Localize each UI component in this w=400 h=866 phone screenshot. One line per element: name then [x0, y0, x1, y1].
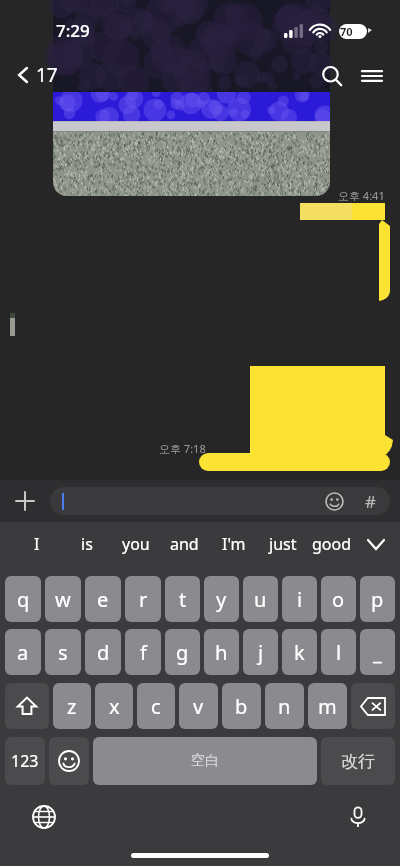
- staticText: a: [17, 639, 29, 666]
- staticText: q: [17, 586, 30, 613]
- staticText: y: [216, 586, 227, 613]
- staticText: I: [34, 533, 40, 555]
- staticText: just: [269, 533, 297, 555]
- staticText: v: [193, 693, 204, 720]
- button[interactable]: Search: [314, 58, 350, 94]
- button[interactable]: Collapse suggestions: [356, 522, 396, 566]
- staticText: 7:29: [56, 19, 90, 42]
- button[interactable]: g: [165, 629, 200, 675]
- staticText: _: [373, 639, 382, 666]
- staticText: u: [254, 586, 267, 613]
- staticText: is: [81, 533, 93, 555]
- staticText: m: [318, 693, 337, 720]
- staticText: 空白: [191, 752, 219, 770]
- staticText: b: [235, 693, 248, 720]
- staticText: o: [332, 586, 345, 613]
- button[interactable]: q: [5, 576, 41, 622]
- staticText: 123: [11, 750, 39, 772]
- staticText: x: [109, 693, 120, 720]
- button[interactable]: good: [307, 522, 356, 566]
- button[interactable]: x: [95, 683, 133, 729]
- staticText: g: [176, 639, 189, 666]
- staticText: k: [294, 639, 305, 666]
- staticText: 오후 4:41: [338, 188, 385, 203]
- button[interactable]: just: [258, 522, 307, 566]
- button[interactable]: m: [308, 683, 347, 729]
- button[interactable]: Add attachment: [8, 484, 42, 518]
- staticText: t: [179, 586, 187, 613]
- staticText: w: [55, 586, 71, 613]
- button[interactable]: c: [137, 683, 175, 729]
- staticText: s: [58, 639, 68, 666]
- button[interactable]: Change language: [24, 797, 64, 837]
- button[interactable]: w: [45, 576, 81, 622]
- staticText: I'm: [222, 533, 246, 555]
- other: Emoji: [325, 492, 344, 511]
- button[interactable]: y: [204, 576, 239, 622]
- button[interactable]: f: [125, 629, 161, 675]
- button[interactable]: u: [243, 576, 278, 622]
- button[interactable]: and: [160, 522, 209, 566]
- staticText: c: [151, 693, 161, 720]
- staticText: e: [97, 586, 109, 613]
- button[interactable]: Menu: [354, 58, 390, 94]
- staticText: 70: [340, 24, 353, 39]
- button[interactable]: 改行: [321, 737, 395, 785]
- button[interactable]: b: [222, 683, 261, 729]
- staticText: 17: [36, 62, 58, 88]
- staticText: d: [97, 639, 110, 666]
- staticText: 오후 7:18: [159, 441, 206, 456]
- button[interactable]: l: [321, 629, 356, 675]
- button[interactable]: v: [179, 683, 218, 729]
- button[interactable]: 123: [5, 737, 45, 785]
- button[interactable]: Back: [10, 58, 64, 92]
- button[interactable]: a: [5, 629, 41, 675]
- staticText: and: [170, 533, 199, 555]
- button[interactable]: s: [45, 629, 81, 675]
- button[interactable]: n: [265, 683, 304, 729]
- staticText: good: [312, 533, 352, 555]
- staticText: h: [215, 639, 228, 666]
- button[interactable]: h: [204, 629, 239, 675]
- button[interactable]: i: [282, 576, 317, 622]
- button[interactable]: 空白: [93, 737, 317, 785]
- button[interactable]: z: [53, 683, 91, 729]
- button[interactable]: you: [111, 522, 160, 566]
- staticText: #: [365, 490, 376, 513]
- staticText: z: [67, 693, 77, 720]
- button[interactable]: o: [321, 576, 356, 622]
- button[interactable]: I'm: [209, 522, 258, 566]
- button[interactable]: t: [165, 576, 200, 622]
- staticText: j: [258, 639, 264, 666]
- button[interactable]: Backspace: [351, 683, 395, 729]
- other: Back: [16, 65, 30, 85]
- button[interactable]: p: [360, 576, 395, 622]
- staticText: n: [278, 693, 291, 720]
- staticText: r: [139, 586, 148, 613]
- button[interactable]: k: [282, 629, 317, 675]
- staticText: p: [371, 586, 384, 613]
- staticText: i: [297, 586, 303, 613]
- staticText: l: [336, 639, 342, 666]
- button[interactable]: is: [62, 522, 111, 566]
- staticText: f: [140, 639, 147, 666]
- button[interactable]: Shift: [5, 683, 49, 729]
- button[interactable]: Emoji keyboard: [49, 737, 89, 785]
- button[interactable]: Emoji: [50, 487, 390, 515]
- staticText: you: [122, 533, 150, 555]
- button[interactable]: j: [243, 629, 278, 675]
- button[interactable]: e: [85, 576, 121, 622]
- button[interactable]: d: [85, 629, 121, 675]
- button[interactable]: _: [360, 629, 395, 675]
- button[interactable]: r: [125, 576, 161, 622]
- button[interactable]: [53, 92, 330, 196]
- staticText: 改行: [341, 751, 375, 772]
- button[interactable]: Voice input: [338, 797, 378, 837]
- button[interactable]: I: [12, 522, 62, 566]
